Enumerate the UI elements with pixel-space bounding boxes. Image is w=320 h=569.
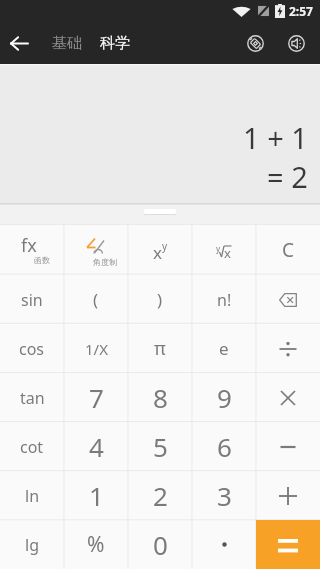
- button[interactable]: 0: [128, 520, 192, 569]
- button[interactable]: e: [192, 324, 256, 373]
- staticText: x: [153, 241, 162, 264]
- button[interactable]: 3: [192, 471, 256, 520]
- button[interactable]: cot: [0, 422, 64, 471]
- staticText: 函数: [34, 255, 50, 265]
- button[interactable]: ln: [0, 471, 64, 520]
- staticText: 1: [89, 478, 104, 513]
- button[interactable]: 2: [128, 471, 192, 520]
- staticText: %: [87, 530, 105, 559]
- staticText: fx: [21, 233, 37, 258]
- button[interactable]: 科学: [100, 34, 130, 53]
- staticText: 3: [217, 478, 232, 513]
- staticText: C: [282, 237, 295, 263]
- button[interactable]: 4: [64, 422, 128, 471]
- staticText: 0: [153, 527, 168, 562]
- button[interactable]: 9: [192, 373, 256, 422]
- button[interactable]: [256, 275, 320, 324]
- button[interactable]: (: [64, 275, 128, 324]
- button[interactable]: y: [192, 225, 256, 275]
- button[interactable]: [192, 520, 256, 569]
- staticText: = 2: [267, 157, 308, 196]
- button[interactable]: tan: [0, 373, 64, 422]
- button[interactable]: [247, 35, 264, 52]
- button[interactable]: 1: [64, 471, 128, 520]
- staticText: tan: [20, 387, 45, 409]
- button[interactable]: 基础: [52, 34, 82, 53]
- button[interactable]: fx: [0, 225, 64, 275]
- staticText: x: [224, 244, 231, 259]
- staticText: 科学: [100, 34, 130, 53]
- button[interactable]: ): [128, 275, 192, 324]
- staticText: 1/X: [85, 339, 108, 359]
- button[interactable]: 7: [64, 373, 128, 422]
- staticText: 6: [217, 429, 232, 464]
- staticText: 8: [153, 380, 168, 415]
- button[interactable]: C: [256, 225, 320, 275]
- staticText: 9: [217, 380, 232, 415]
- staticText: y: [162, 239, 168, 253]
- button[interactable]: 8: [128, 373, 192, 422]
- staticText: sin: [21, 289, 43, 311]
- staticText: 4: [89, 429, 104, 464]
- button[interactable]: 5: [128, 422, 192, 471]
- staticText: ): [157, 288, 163, 311]
- staticText: 1 + 1: [243, 118, 308, 157]
- staticText: 5: [153, 429, 168, 464]
- button[interactable]: π: [128, 324, 192, 373]
- staticText: 基础: [52, 34, 82, 53]
- staticText: 2: [153, 478, 168, 513]
- button[interactable]: [256, 422, 320, 471]
- staticText: n!: [217, 289, 232, 311]
- button[interactable]: lg: [0, 520, 64, 569]
- staticText: lg: [25, 534, 39, 556]
- button[interactable]: 6: [192, 422, 256, 471]
- staticText: 角度制: [93, 257, 117, 267]
- button[interactable]: sin: [0, 275, 64, 324]
- staticText: 7: [89, 380, 104, 415]
- button[interactable]: [288, 35, 305, 52]
- staticText: cos: [19, 338, 45, 360]
- button[interactable]: n!: [192, 275, 256, 324]
- staticText: 2:57: [289, 3, 313, 19]
- button[interactable]: x: [128, 225, 192, 275]
- button[interactable]: [5, 29, 33, 57]
- button[interactable]: [256, 373, 320, 422]
- button[interactable]: [256, 324, 320, 373]
- button[interactable]: cos: [0, 324, 64, 373]
- button[interactable]: [256, 520, 320, 569]
- button[interactable]: 1/X: [64, 324, 128, 373]
- staticText: ln: [25, 485, 40, 507]
- staticText: cot: [20, 436, 44, 458]
- button[interactable]: 角度制: [64, 225, 128, 275]
- button[interactable]: [256, 471, 320, 520]
- staticText: e: [219, 337, 229, 360]
- staticText: (: [93, 288, 99, 311]
- button[interactable]: %: [64, 520, 128, 569]
- staticText: y: [216, 243, 221, 254]
- staticText: π: [154, 336, 166, 361]
